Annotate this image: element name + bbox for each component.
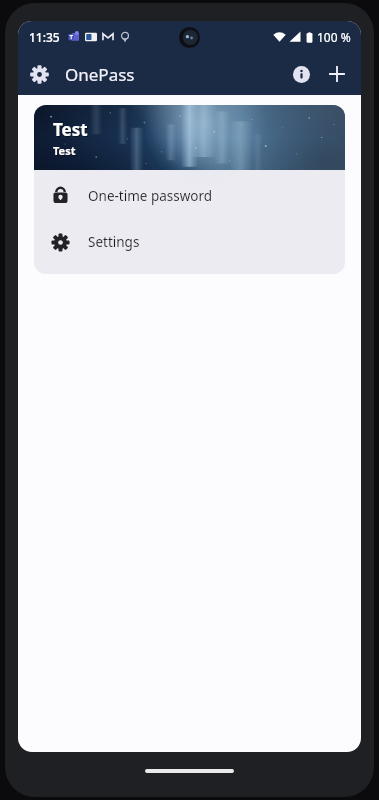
button[interactable]: One-time password bbox=[34, 173, 345, 219]
button[interactable]: Settings bbox=[18, 59, 57, 90]
staticText: Test bbox=[53, 118, 88, 141]
button[interactable]: Test bbox=[34, 105, 345, 170]
staticText: Test bbox=[53, 143, 76, 158]
staticText: OnePass bbox=[65, 63, 135, 86]
staticText: Test bbox=[54, 144, 77, 159]
staticText: 11:35 bbox=[29, 29, 60, 45]
button[interactable]: Add bbox=[319, 56, 355, 92]
button[interactable]: Info bbox=[283, 56, 319, 92]
staticText: Settings bbox=[88, 233, 140, 251]
staticText: 100 % bbox=[317, 29, 351, 45]
staticText: One-time password bbox=[88, 187, 213, 205]
staticText: Test bbox=[54, 119, 89, 142]
button[interactable]: Settings bbox=[34, 219, 345, 265]
